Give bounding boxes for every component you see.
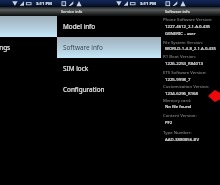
staticText: Model info <box>63 22 96 31</box>
staticText: 1227-4612_2.1.A.0.435 <box>165 23 211 29</box>
staticText: 1225-9998_7 <box>165 76 191 82</box>
staticText: Service info <box>61 9 83 14</box>
staticText: R1 Boot Version: <box>163 53 197 59</box>
staticText: PF2 <box>165 119 173 125</box>
staticText: WORLD-1-4-8_2.1.A.0.435 <box>165 45 216 51</box>
staticText: Type Number: <box>163 129 192 135</box>
button[interactable]: Software info <box>57 37 161 58</box>
staticText: Software info <box>165 9 190 14</box>
staticText: AAD-3880856-BV <box>165 136 199 142</box>
button[interactable]: SIM lock <box>57 58 161 79</box>
staticText: Customization Version: <box>163 83 210 89</box>
staticText: 3:11 PM <box>140 1 157 7</box>
staticText: Software info <box>63 43 103 52</box>
button[interactable]: Location settings <box>0 37 57 58</box>
staticText: Location settings <box>0 43 11 52</box>
staticText: 3:11 PM <box>36 1 53 7</box>
staticText: 1226-2253_R84013 <box>165 60 203 66</box>
staticText: 1234-6296_R168 <box>165 90 198 96</box>
button[interactable]: Wireless <box>0 16 57 37</box>
staticText: Configuration <box>63 85 105 94</box>
other: Pointer <box>208 90 220 102</box>
staticText: Content Version: <box>163 112 197 118</box>
staticText: Phone Software Version: <box>163 16 213 22</box>
staticText: File System Version: <box>163 39 203 45</box>
button[interactable]: Model info <box>57 16 161 37</box>
staticText: SIM lock <box>63 64 89 73</box>
staticText: ETS Software Version: <box>163 69 207 75</box>
staticText: Memory card: <box>163 97 191 103</box>
button[interactable]: Configuration <box>57 79 161 100</box>
staticText: GENERIC - user <box>165 30 196 36</box>
staticText: No file found <box>165 103 192 109</box>
